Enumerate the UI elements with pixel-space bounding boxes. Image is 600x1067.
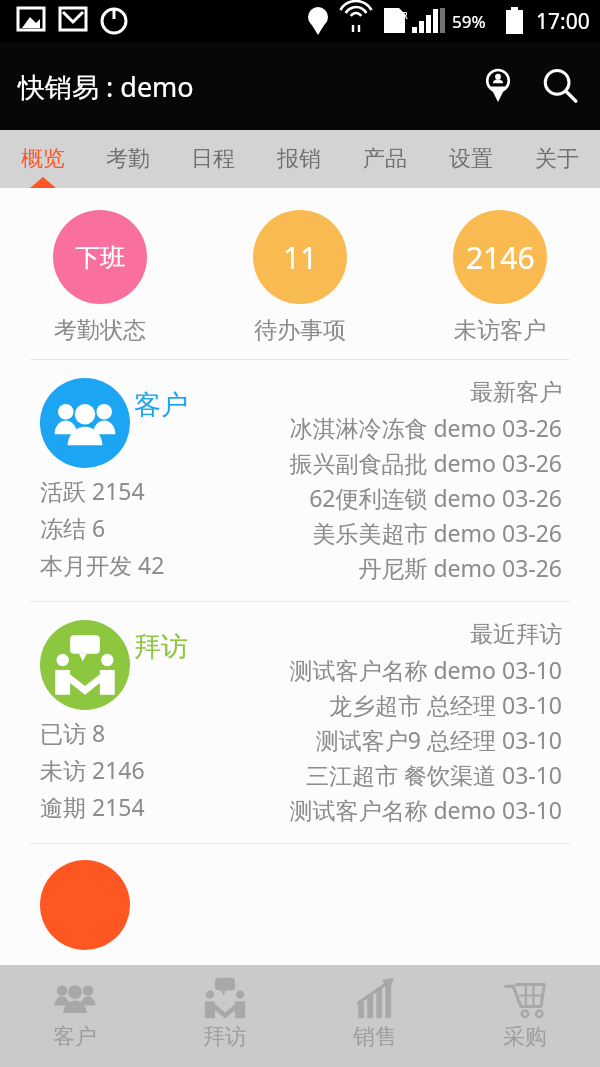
staticText: 采购	[503, 1023, 547, 1051]
button[interactable]: 报销	[256, 130, 342, 188]
button[interactable]: 考勤	[85, 130, 170, 188]
button[interactable]: 下班	[0, 210, 200, 345]
staticText: 测试客户9 总经理 03-10	[315, 724, 562, 755]
staticText: 拜访	[134, 630, 188, 664]
button[interactable]: 产品	[342, 130, 428, 188]
staticText: 下班	[75, 242, 125, 273]
button[interactable]: 概览	[0, 130, 85, 188]
staticText: 丹尼斯 demo 03-26	[358, 552, 562, 583]
staticText: 报销	[277, 145, 321, 173]
button[interactable]: 销售	[40, 860, 130, 950]
staticText: 测试客户名称 demo 03-10	[289, 794, 562, 825]
staticText: 62便利连锁 demo 03-26	[309, 482, 562, 513]
staticText: 销售	[353, 1023, 397, 1051]
button[interactable]: 搜索	[532, 58, 588, 114]
button[interactable]: 日程	[170, 130, 256, 188]
staticText: 考勤状态	[54, 316, 146, 345]
staticText: 冻结 6	[40, 512, 106, 543]
button[interactable]: 11	[200, 210, 400, 345]
button[interactable]: 客户	[0, 360, 600, 601]
staticText: 已访 8	[40, 717, 106, 748]
button[interactable]: 拜访	[150, 965, 300, 1067]
button[interactable]: 销售	[300, 965, 450, 1067]
staticText: 美乐美超市 demo 03-26	[312, 517, 562, 548]
staticText: 日程	[191, 145, 235, 173]
staticText: 考勤	[106, 145, 150, 173]
staticText: 冰淇淋冷冻食 demo 03-26	[289, 412, 562, 443]
staticText: 关于	[535, 145, 579, 173]
staticText: 最新客户	[470, 378, 562, 407]
staticText: 未访 2146	[40, 754, 145, 785]
staticText: R	[402, 9, 408, 21]
staticText: 逾期 2154	[40, 791, 145, 822]
button[interactable]: 客户	[0, 965, 150, 1067]
button[interactable]: 关于	[514, 130, 600, 188]
staticText: 客户	[134, 388, 188, 422]
button[interactable]: 签到	[470, 58, 526, 114]
button[interactable]: 2146	[400, 210, 600, 345]
staticText: 11	[283, 237, 318, 278]
button[interactable]: 采购	[450, 965, 600, 1067]
staticText: 待办事项	[254, 316, 346, 345]
staticText: 产品	[363, 145, 407, 173]
button[interactable]: 拜访	[0, 602, 600, 843]
staticText: 拜访	[203, 1023, 247, 1051]
staticText: 活跃 2154	[40, 475, 145, 506]
button[interactable]: 设置	[428, 130, 514, 188]
staticText: 快销易 : demo	[18, 68, 194, 105]
staticText: 17:00	[536, 7, 590, 36]
staticText: 最近拜访	[470, 620, 562, 649]
staticText: 振兴副食品批 demo 03-26	[289, 447, 562, 478]
staticText: 测试客户名称 demo 03-10	[289, 654, 562, 685]
staticText: 设置	[449, 145, 493, 173]
staticText: 59%	[452, 10, 486, 33]
staticText: 三江超市 餐饮渠道 03-10	[306, 759, 562, 790]
staticText: 客户	[53, 1023, 97, 1051]
staticText: 本月开发 42	[40, 549, 165, 580]
staticText: 2146	[466, 237, 535, 278]
staticText: 龙乡超市 总经理 03-10	[329, 689, 562, 720]
staticText: 概览	[21, 145, 65, 173]
staticText: 未访客户	[454, 316, 546, 345]
